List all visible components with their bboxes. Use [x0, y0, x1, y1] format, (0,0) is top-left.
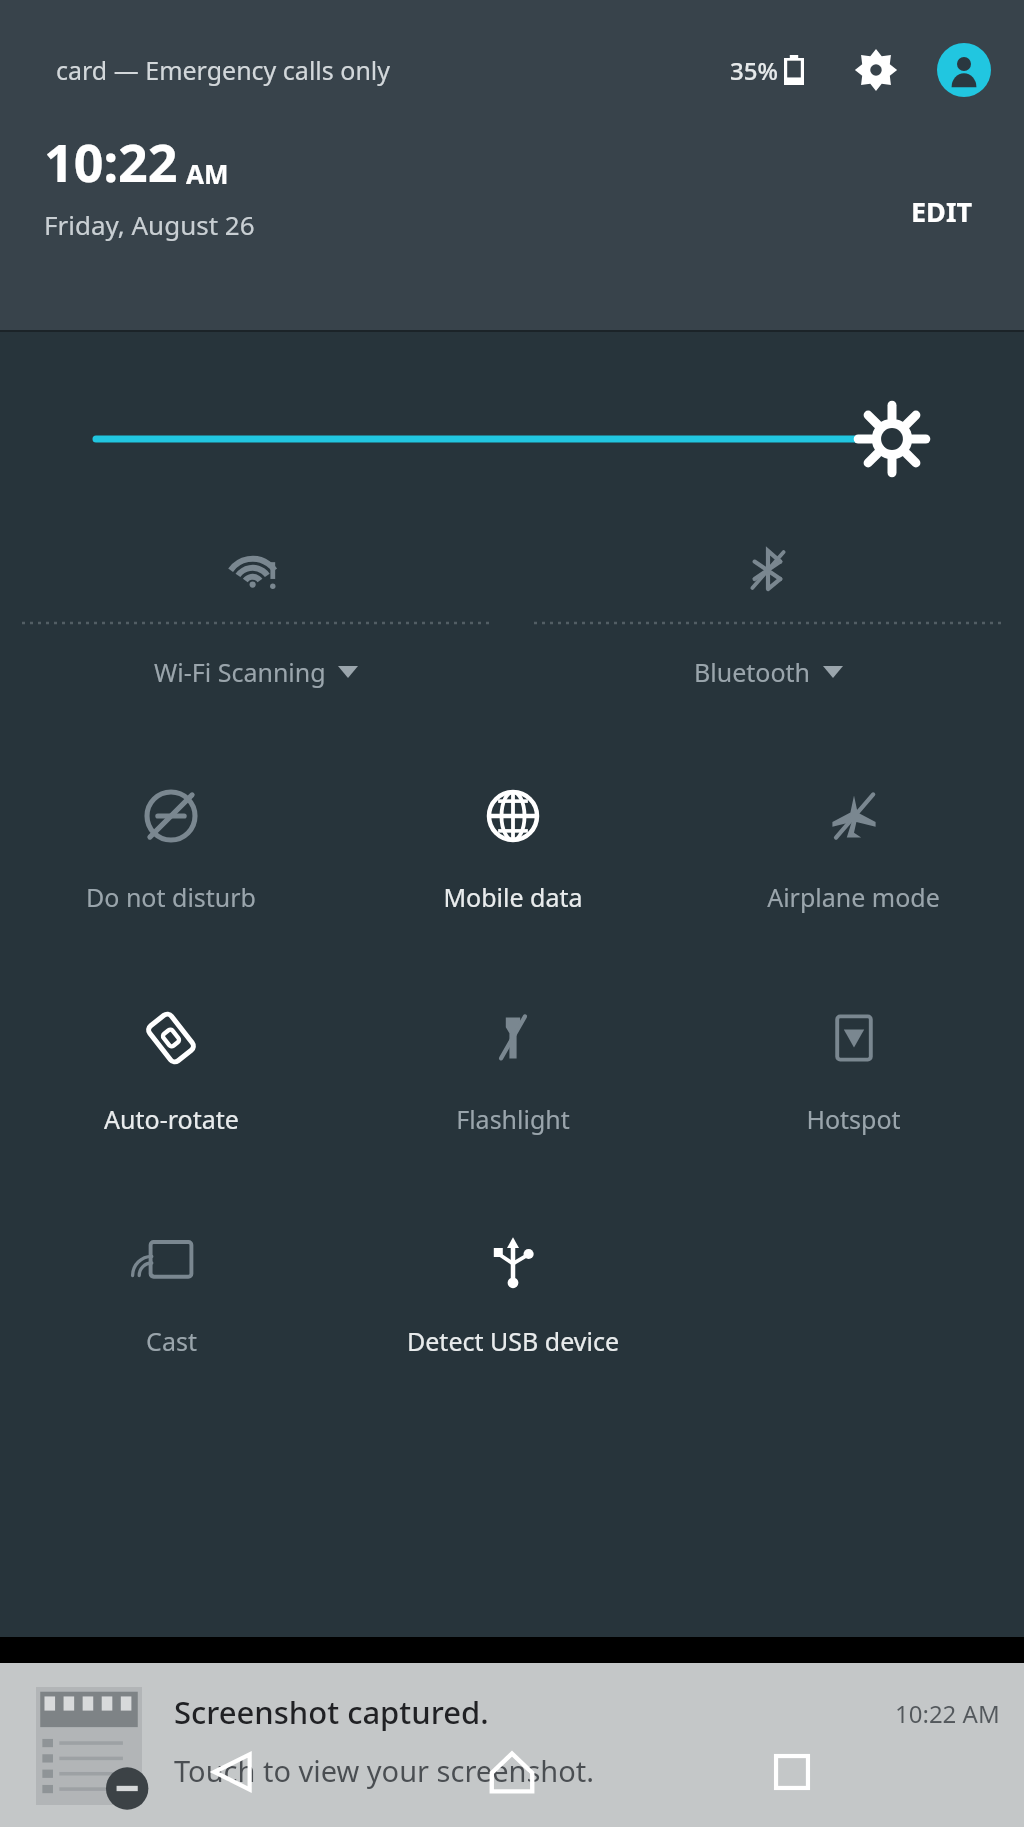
- staticText: Auto-rotate: [104, 1102, 239, 1136]
- staticText: Flashlight: [456, 1102, 570, 1136]
- button[interactable]: Recents: [744, 1724, 840, 1820]
- staticText: EDIT: [911, 193, 972, 230]
- staticText: 10:22: [44, 126, 178, 197]
- staticText: Friday, August 26: [44, 207, 255, 242]
- staticText: Airplane mode: [767, 880, 940, 914]
- button[interactable]: Brightness: [0, 394, 1024, 484]
- staticText: Mobile data: [443, 880, 583, 914]
- staticText: Bluetooth: [694, 655, 811, 689]
- staticText: Wi-Fi Scanning: [154, 655, 326, 689]
- staticText: AM: [186, 156, 229, 191]
- button[interactable]: Bluetooth: [512, 532, 1024, 732]
- button[interactable]: Detect USB device: [342, 1216, 683, 1416]
- staticText: Cast: [146, 1324, 197, 1358]
- button[interactable]: Home: [464, 1724, 560, 1820]
- staticText: Touch to view your screenshot.: [174, 1751, 595, 1790]
- button[interactable]: Do not disturb: [0, 772, 342, 972]
- button[interactable]: Cast: [0, 1216, 342, 1416]
- button[interactable]: Hotspot: [683, 994, 1024, 1194]
- button[interactable]: Wi-Fi Scanning: [0, 532, 512, 732]
- staticText: Do not disturb: [86, 880, 256, 914]
- button[interactable]: Auto-rotate: [0, 994, 342, 1194]
- button[interactable]: User account: [932, 38, 996, 102]
- button[interactable]: Airplane mode: [683, 772, 1024, 972]
- staticText: 35%: [730, 54, 778, 87]
- button[interactable]: EDIT: [899, 185, 984, 238]
- staticText: Screenshot captured.: [174, 1691, 489, 1733]
- button[interactable]: Mobile data: [342, 772, 683, 972]
- button[interactable]: Back: [184, 1724, 280, 1820]
- staticText: Detect USB device: [407, 1324, 619, 1358]
- button[interactable]: Flashlight: [342, 994, 683, 1194]
- staticText: card — Emergency calls only: [56, 53, 391, 87]
- button[interactable]: Settings: [844, 38, 908, 102]
- staticText: 10:22 AM: [895, 1697, 1000, 1730]
- staticText: Hotspot: [806, 1102, 901, 1136]
